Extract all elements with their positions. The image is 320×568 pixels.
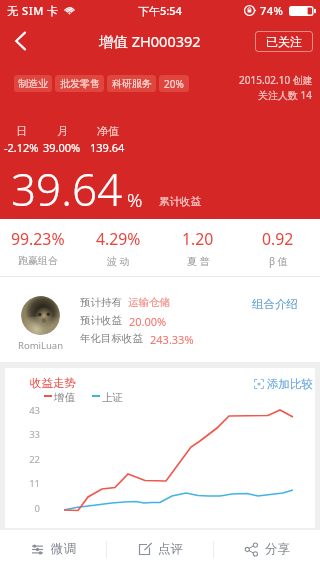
staticText: 添加比较 [267, 377, 313, 391]
button[interactable]: 4.29% [78, 219, 158, 276]
button[interactable]: 微调 [0, 530, 106, 568]
staticText: 日 [16, 124, 27, 138]
button[interactable]: 添加比较 [250, 373, 317, 395]
staticText: 运输仓储 [128, 296, 170, 309]
button[interactable]: 0.92 [238, 219, 318, 276]
button[interactable]: 制造业 [14, 75, 52, 92]
staticText: β 值 [269, 254, 288, 268]
staticText: 波 动 [107, 254, 130, 268]
staticText: 20.00% [129, 314, 167, 329]
staticText: 1.20 [182, 228, 214, 250]
staticText: 跑赢组合 [18, 254, 58, 267]
staticText: 139.64 [90, 140, 125, 155]
staticText: 月 [57, 124, 68, 138]
button[interactable]: Back [0, 20, 42, 62]
staticText: 增值 [54, 391, 75, 404]
staticText: 科研服务 [112, 77, 152, 90]
staticText: 33 [13, 428, 40, 441]
staticText: 39.00% [43, 140, 81, 155]
staticText: 预计收益 [80, 314, 122, 327]
staticText: 下午5:54 [138, 3, 182, 18]
staticText: 39.64 [11, 159, 123, 219]
staticText: % [127, 187, 143, 213]
staticText: 243.33% [150, 332, 194, 347]
button[interactable]: 已关注 [255, 31, 313, 52]
staticText: 预计持有 [80, 296, 122, 309]
staticText: 99.23% [11, 228, 65, 250]
staticText: 74% [260, 3, 284, 18]
staticText: 无 SIM 卡 [7, 3, 59, 18]
staticText: 0 [13, 502, 40, 515]
button[interactable]: 点评 [107, 530, 213, 568]
staticText: 制造业 [18, 77, 48, 90]
button[interactable]: 分享 [214, 530, 320, 568]
staticText: 20% [164, 77, 184, 91]
staticText: 增值 ZH000392 [99, 31, 201, 51]
staticText: 组合介绍 [252, 297, 298, 311]
button[interactable]: 99.23% [0, 219, 78, 276]
staticText: 点评 [158, 541, 183, 557]
staticText: RomiLuan [18, 339, 64, 352]
staticText: 22 [13, 453, 40, 466]
staticText: 分享 [265, 541, 290, 557]
staticText: 年化目标收益 [80, 332, 143, 345]
button[interactable]: 批发零售 [55, 75, 104, 92]
staticText: 夏 普 [187, 254, 210, 268]
staticText: 关注人数 14 [258, 88, 313, 102]
staticText: 微调 [51, 541, 76, 557]
staticText: 2015.02.10 创建 [239, 73, 313, 87]
button[interactable]: 1.20 [158, 219, 238, 276]
button[interactable]: 组合介绍 [248, 292, 302, 316]
button[interactable]: 20% [159, 75, 189, 92]
staticText: 43 [13, 404, 40, 417]
staticText: 上证 [102, 391, 123, 404]
staticText: 0.92 [262, 228, 294, 250]
staticText: 4.29% [96, 228, 141, 250]
staticText: 已关注 [266, 34, 302, 49]
staticText: 净值 [97, 124, 119, 138]
staticText: 11 [13, 477, 40, 490]
button[interactable]: 科研服务 [107, 75, 156, 92]
staticText: 累计收益 [159, 195, 201, 208]
staticText: -2.12% [4, 140, 39, 155]
staticText: 批发零售 [60, 77, 100, 90]
staticText: 收益走势 [30, 376, 76, 390]
